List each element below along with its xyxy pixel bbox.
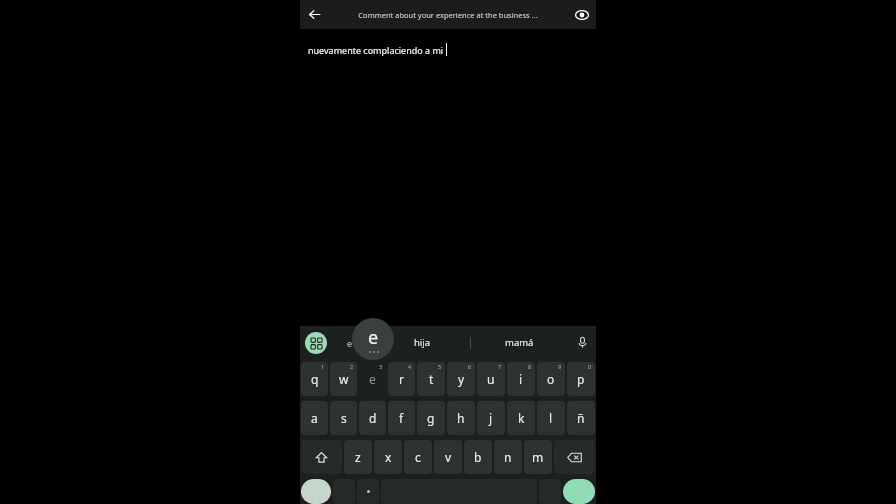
staticText: f [399, 410, 404, 426]
staticText: 1 [321, 363, 325, 370]
button[interactable]: Emoji [301, 479, 331, 504]
button[interactable]: x [374, 440, 402, 474]
staticText: c [415, 449, 421, 465]
staticText: x [385, 449, 392, 465]
button[interactable]: u [477, 362, 505, 396]
button[interactable]: Shift [301, 440, 342, 474]
staticText: e [369, 371, 376, 387]
staticText: v [445, 449, 452, 465]
button[interactable]: v [434, 440, 462, 474]
staticText: d [369, 410, 377, 426]
button[interactable]: m [524, 440, 552, 474]
staticText: 2 [350, 363, 354, 370]
button[interactable]: ñ [567, 401, 595, 435]
button[interactable]: s [330, 401, 357, 435]
staticText: l [549, 410, 553, 426]
button[interactable]: Voice input [568, 326, 596, 359]
staticText: y [458, 371, 465, 387]
button[interactable]: r [388, 362, 415, 396]
staticText: z [355, 449, 361, 465]
staticText: a [311, 410, 318, 426]
staticText: 7 [498, 363, 502, 370]
button[interactable]: e [359, 362, 386, 396]
staticText: i [519, 371, 523, 387]
button[interactable]: w [330, 362, 357, 396]
staticText: w [339, 371, 349, 387]
button[interactable]: Backspace [554, 440, 595, 474]
button[interactable]: n [494, 440, 522, 474]
staticText: nuevamente complaciendo a mi [308, 44, 444, 56]
staticText: 0 [588, 363, 592, 370]
staticText: 6 [468, 363, 472, 370]
staticText: k [518, 410, 525, 426]
button[interactable]: z [344, 440, 372, 474]
button[interactable]: hija [374, 326, 470, 359]
button[interactable]: t [417, 362, 445, 396]
button[interactable]: Comma [357, 479, 379, 504]
button[interactable]: b [464, 440, 492, 474]
staticText: 3 [379, 363, 383, 370]
staticText: g [427, 410, 435, 426]
staticText: 8 [528, 363, 532, 370]
button[interactable]: o [537, 362, 565, 396]
button[interactable]: q [301, 362, 328, 396]
button[interactable]: mamá [471, 326, 568, 359]
button[interactable]: Enter [563, 479, 595, 504]
button[interactable]: h [447, 401, 475, 435]
button[interactable]: j [477, 401, 505, 435]
button[interactable]: Preview [567, 0, 596, 29]
staticText: h [457, 410, 465, 426]
staticText: e [347, 337, 353, 349]
button[interactable]: l [537, 401, 565, 435]
staticText: r [399, 371, 404, 387]
button[interactable]: f [388, 401, 415, 435]
staticText: u [487, 371, 495, 387]
staticText: 5 [438, 363, 442, 370]
button[interactable]: d [359, 401, 386, 435]
button[interactable]: Back [300, 0, 329, 29]
staticText: ñ [577, 410, 585, 426]
staticText: 4 [408, 363, 412, 370]
button[interactable]: e [327, 326, 373, 359]
staticText: b [474, 449, 482, 465]
button[interactable]: k [507, 401, 535, 435]
staticText: p [577, 371, 585, 387]
staticText: Comment about your experience at the bus… [335, 10, 561, 20]
staticText: j [489, 410, 493, 426]
button[interactable]: g [417, 401, 445, 435]
button[interactable]: c [404, 440, 432, 474]
button[interactable]: a [301, 401, 328, 435]
button[interactable]: y [447, 362, 475, 396]
staticText: n [504, 449, 512, 465]
staticText: o [547, 371, 555, 387]
button[interactable]: p [567, 362, 595, 396]
button[interactable]: i [507, 362, 535, 396]
staticText: m [532, 449, 544, 465]
staticText: hija [414, 336, 431, 349]
staticText: 9 [558, 363, 562, 370]
staticText: e [368, 325, 379, 350]
staticText: q [311, 371, 319, 387]
staticText: t [429, 371, 434, 387]
staticText: mamá [505, 336, 534, 349]
button[interactable]: Keyboard tools [305, 332, 327, 354]
staticText: s [341, 410, 347, 426]
